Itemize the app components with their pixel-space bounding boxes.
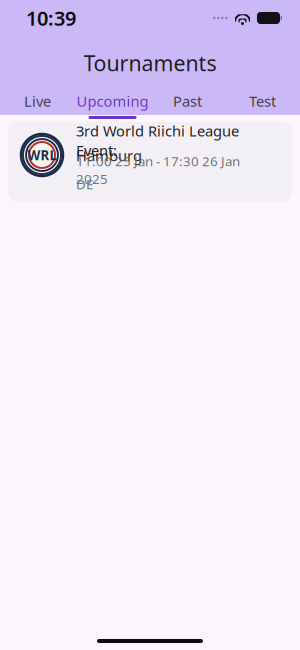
button[interactable]: Live — [0, 86, 75, 119]
button[interactable]: Test — [225, 86, 300, 119]
staticText: DE — [76, 175, 93, 193]
button[interactable]: Upcoming — [75, 86, 150, 119]
staticText: Hamburg — [76, 146, 142, 165]
button[interactable]: Past — [150, 86, 225, 119]
staticText: 10:39 — [26, 5, 76, 31]
staticText: Upcoming — [76, 91, 148, 111]
staticText: Past — [173, 91, 202, 111]
staticText: Test — [249, 91, 276, 111]
staticText: 3rd World Riichi League Event: — [76, 121, 239, 160]
staticText: Live — [24, 91, 51, 111]
staticText: WRL — [27, 146, 56, 164]
staticText: Tournaments — [83, 49, 216, 77]
staticText: 11:00 25 Jan - 17:30 26 Jan 2025 — [76, 152, 240, 188]
button[interactable]: WRL — [8, 122, 292, 202]
